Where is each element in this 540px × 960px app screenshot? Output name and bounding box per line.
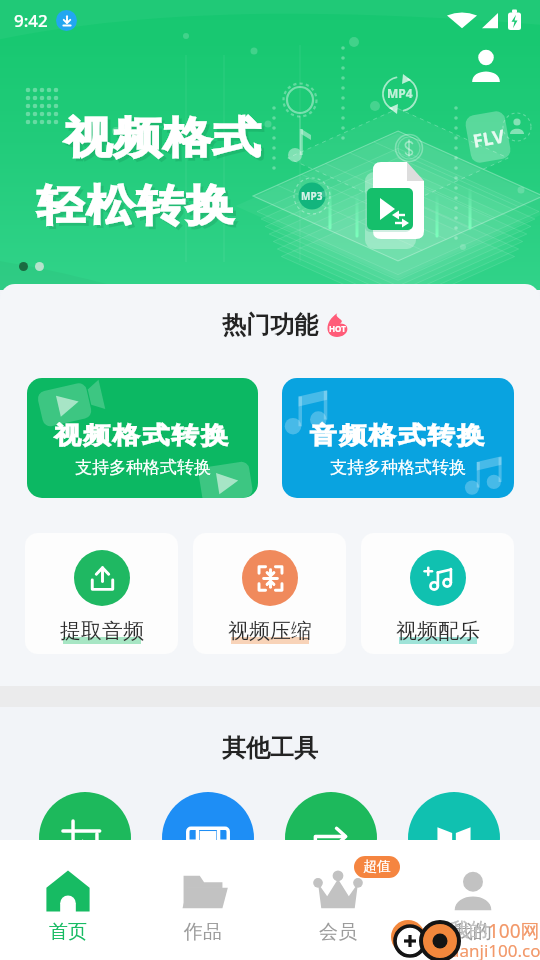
staticText: 视频配乐 — [396, 618, 480, 644]
button[interactable]: 音频格式转换 — [282, 378, 514, 498]
button[interactable]: Split video — [408, 792, 500, 884]
button[interactable]: Profile — [462, 42, 510, 90]
staticText: 视频格式 — [64, 112, 263, 165]
button[interactable]: 我的 — [405, 840, 540, 960]
staticText: 我的 — [454, 920, 492, 944]
staticText: 视频格式转换 — [54, 421, 231, 450]
staticText: 支持多种格式转换 — [330, 457, 466, 478]
staticText: 作品 — [184, 920, 222, 944]
staticText: 9:42 — [14, 9, 48, 32]
button[interactable]: 视频配乐 — [361, 533, 514, 654]
staticText: MP3 — [301, 189, 323, 203]
button[interactable]: 视频格式转换 — [27, 378, 258, 498]
button[interactable]: 视频压缩 — [193, 533, 346, 654]
staticText: danji100.com — [449, 939, 540, 960]
button[interactable]: Rotate video — [285, 792, 377, 884]
button[interactable]: 首页 — [0, 840, 135, 960]
staticText: 视频格式 — [67, 115, 266, 168]
button[interactable]: 作品 — [135, 840, 270, 960]
staticText: 我的 — [450, 918, 488, 942]
button[interactable]: 会员 — [270, 840, 405, 960]
staticText: 热门功能 — [222, 310, 318, 340]
button[interactable]: Video frames — [162, 792, 254, 884]
staticText: 100网 — [488, 918, 540, 944]
staticText: 视频压缩 — [228, 618, 312, 644]
staticText: MP4 — [387, 85, 413, 101]
staticText: 轻松转换 — [40, 183, 239, 236]
staticText: 音频格式转换 — [310, 421, 487, 450]
staticText: 其他工具 — [222, 733, 318, 763]
button[interactable]: Crop video — [39, 792, 131, 884]
staticText: 轻松转换 — [37, 180, 236, 233]
button[interactable]: 提取音频 — [25, 533, 178, 654]
staticText: 会员 — [319, 920, 357, 944]
staticText: FLV — [471, 123, 507, 154]
staticText: 超值 — [363, 858, 391, 876]
staticText: 首页 — [49, 920, 87, 944]
staticText: 提取音频 — [60, 618, 144, 644]
staticText: 支持多种格式转换 — [75, 457, 211, 478]
staticText: HOT — [329, 323, 346, 334]
